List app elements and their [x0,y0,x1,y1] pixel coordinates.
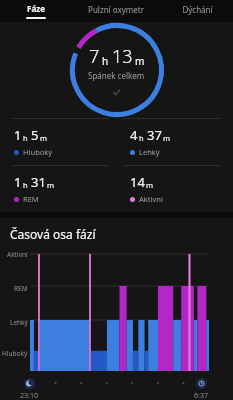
staticText: 1 [14,126,22,144]
staticText: 1 [14,173,22,191]
staticText: Dýchání [182,4,213,15]
staticText: h [102,54,109,68]
staticText: h [139,133,144,143]
staticText: Fáze [27,3,45,14]
staticText: m [163,133,171,143]
staticText: Lehký [139,147,160,157]
staticText: Časová osa fází [10,226,96,242]
staticText: 23:10 [20,391,38,400]
staticText: m [40,133,48,143]
button[interactable]: Fáze [0,0,71,22]
staticText: 14 [130,173,145,191]
staticText: Aktivní [7,250,28,259]
staticText: 6:37 [194,391,208,400]
staticText: 37 [147,126,162,144]
staticText: Spánek celkem [88,70,145,81]
staticText: Pulzní oxymetr [88,4,144,15]
staticText: 31 [31,173,46,191]
other: Sleep start [24,378,35,389]
button[interactable]: 1 [0,119,116,165]
staticText: h [23,180,28,190]
staticText: 4 [130,126,138,144]
button[interactable]: Dýchání [161,0,233,22]
staticText: REM [23,194,39,204]
staticText: h [23,133,28,143]
staticText: Hluboký [23,147,53,157]
staticText: m [47,180,55,190]
button[interactable]: 4 [116,119,233,165]
staticText: 7 [89,44,100,69]
staticText: Lehký [10,318,28,327]
staticText: 13 [112,44,133,69]
other: Wake time [196,378,207,389]
staticText: m [135,54,145,68]
button[interactable]: 1 [0,166,116,212]
staticText: Hluboký [2,349,28,358]
staticText: Aktivní [139,194,163,204]
staticText: 5 [31,126,39,144]
button[interactable]: 14 [116,166,233,212]
staticText: m [146,180,154,190]
staticText: REM [14,284,28,293]
button[interactable]: Pulzní oxymetr [71,0,161,22]
